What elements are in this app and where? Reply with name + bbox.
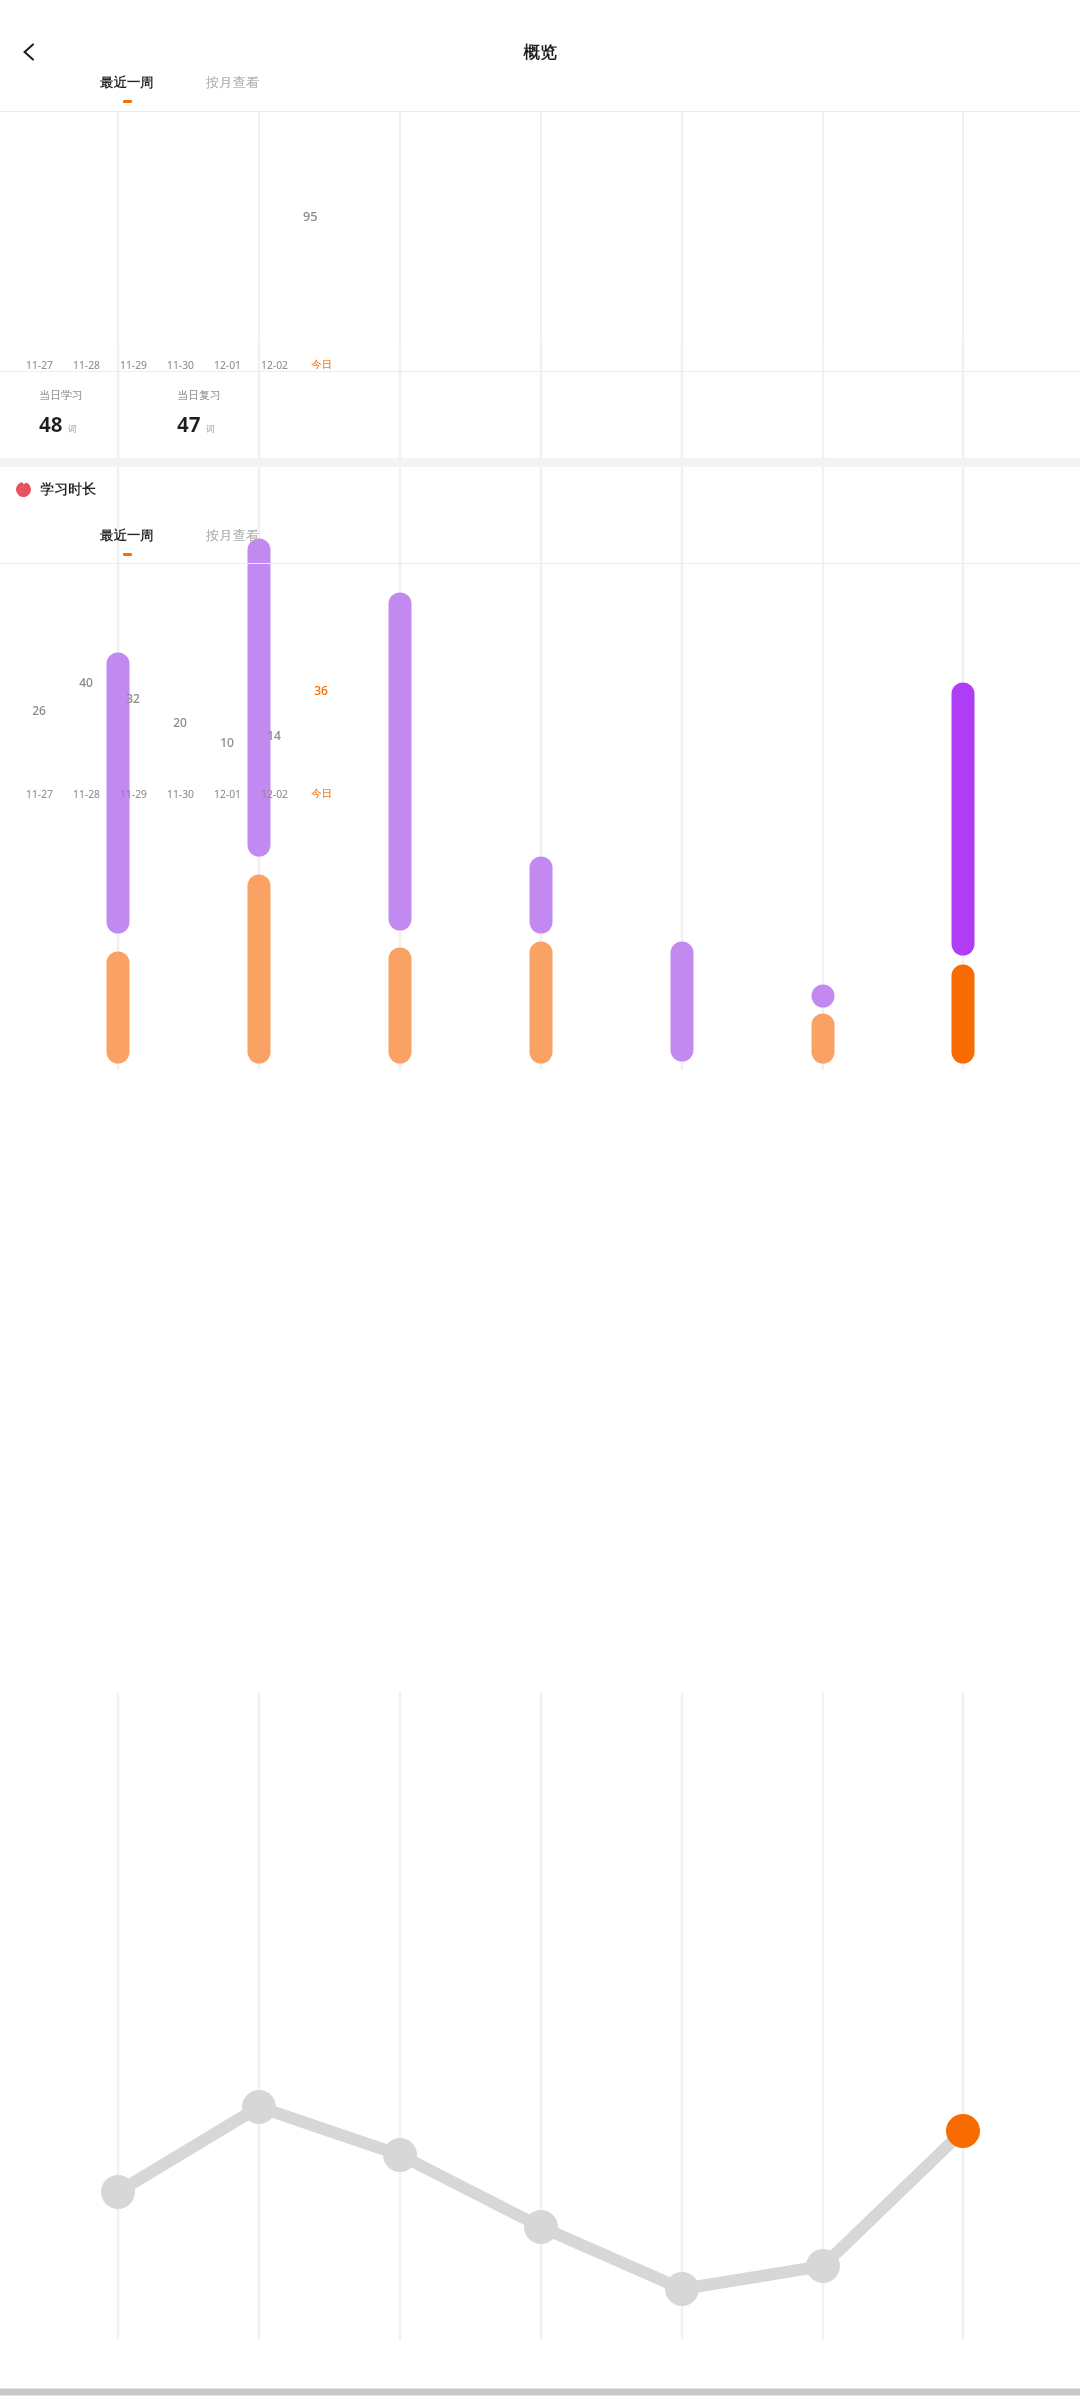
staticText: 11-30 <box>167 787 194 801</box>
staticText: 12-01 <box>214 358 241 372</box>
staticText: 今日 <box>311 358 332 371</box>
staticText: 11-27 <box>26 787 53 801</box>
staticText: 95 <box>303 207 318 224</box>
button[interactable]: 按月查看 <box>193 527 272 562</box>
staticText: 12-02 <box>261 358 288 372</box>
staticText: 按月查看 <box>206 527 260 544</box>
staticText: 当日学习 <box>39 388 83 402</box>
staticText: 11-27 <box>26 358 53 372</box>
button[interactable]: 最近一周 <box>87 74 166 109</box>
staticText: 最近一周 <box>100 527 154 544</box>
staticText: 当日复习 <box>177 388 221 402</box>
staticText: 26 <box>32 702 46 718</box>
staticText: 11-28 <box>73 358 100 372</box>
staticText: 20 <box>173 714 187 730</box>
staticText: 12-02 <box>261 787 288 801</box>
staticText: 47 <box>177 410 201 438</box>
staticText: 最近一周 <box>100 74 154 91</box>
staticText: 11-28 <box>73 787 100 801</box>
button[interactable]: 最近一周 <box>87 527 166 562</box>
staticText: 11-29 <box>120 787 147 801</box>
button[interactable]: 按月查看 <box>193 74 272 109</box>
staticText: 词 <box>68 424 77 435</box>
staticText: 36 <box>314 682 328 698</box>
staticText: 40 <box>79 674 93 690</box>
staticText: 11-29 <box>120 358 147 372</box>
staticText: 12-01 <box>214 787 241 801</box>
staticText: 14 <box>267 727 281 743</box>
staticText: 48 <box>39 410 63 438</box>
staticText: 词 <box>206 424 215 435</box>
staticText: 今日 <box>311 787 332 800</box>
button[interactable]: Back <box>10 33 47 70</box>
staticText: 按月查看 <box>206 74 260 91</box>
staticText: 10 <box>220 734 234 750</box>
staticText: 学习时长 <box>40 481 96 499</box>
staticText: 概览 <box>523 42 557 63</box>
staticText: 32 <box>126 690 140 706</box>
staticText: 11-30 <box>167 358 194 372</box>
